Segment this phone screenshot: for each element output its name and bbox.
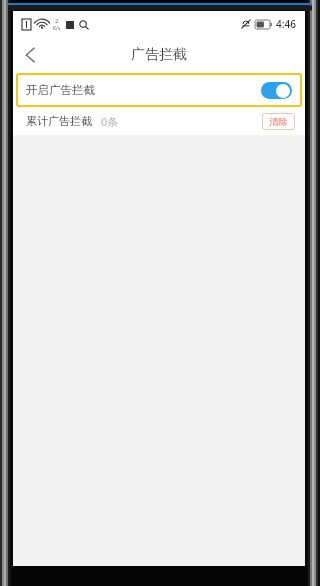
button[interactable]: 开启广告拦截 — [16, 73, 302, 107]
staticText: 广告拦截 — [131, 46, 187, 64]
staticText: 清除 — [269, 116, 288, 128]
button[interactable]: Enable ad blocking toggle — [261, 82, 292, 99]
staticText: K/s — [53, 25, 61, 32]
button[interactable]: 清除 — [262, 113, 295, 130]
button[interactable]: Back — [13, 38, 47, 72]
staticText: 累计广告拦截 — [26, 114, 92, 128]
staticText: 2 — [55, 17, 59, 25]
staticText: 0条 — [101, 114, 119, 129]
staticText: 开启广告拦截 — [26, 83, 95, 97]
staticText: 4:46 — [276, 17, 296, 31]
